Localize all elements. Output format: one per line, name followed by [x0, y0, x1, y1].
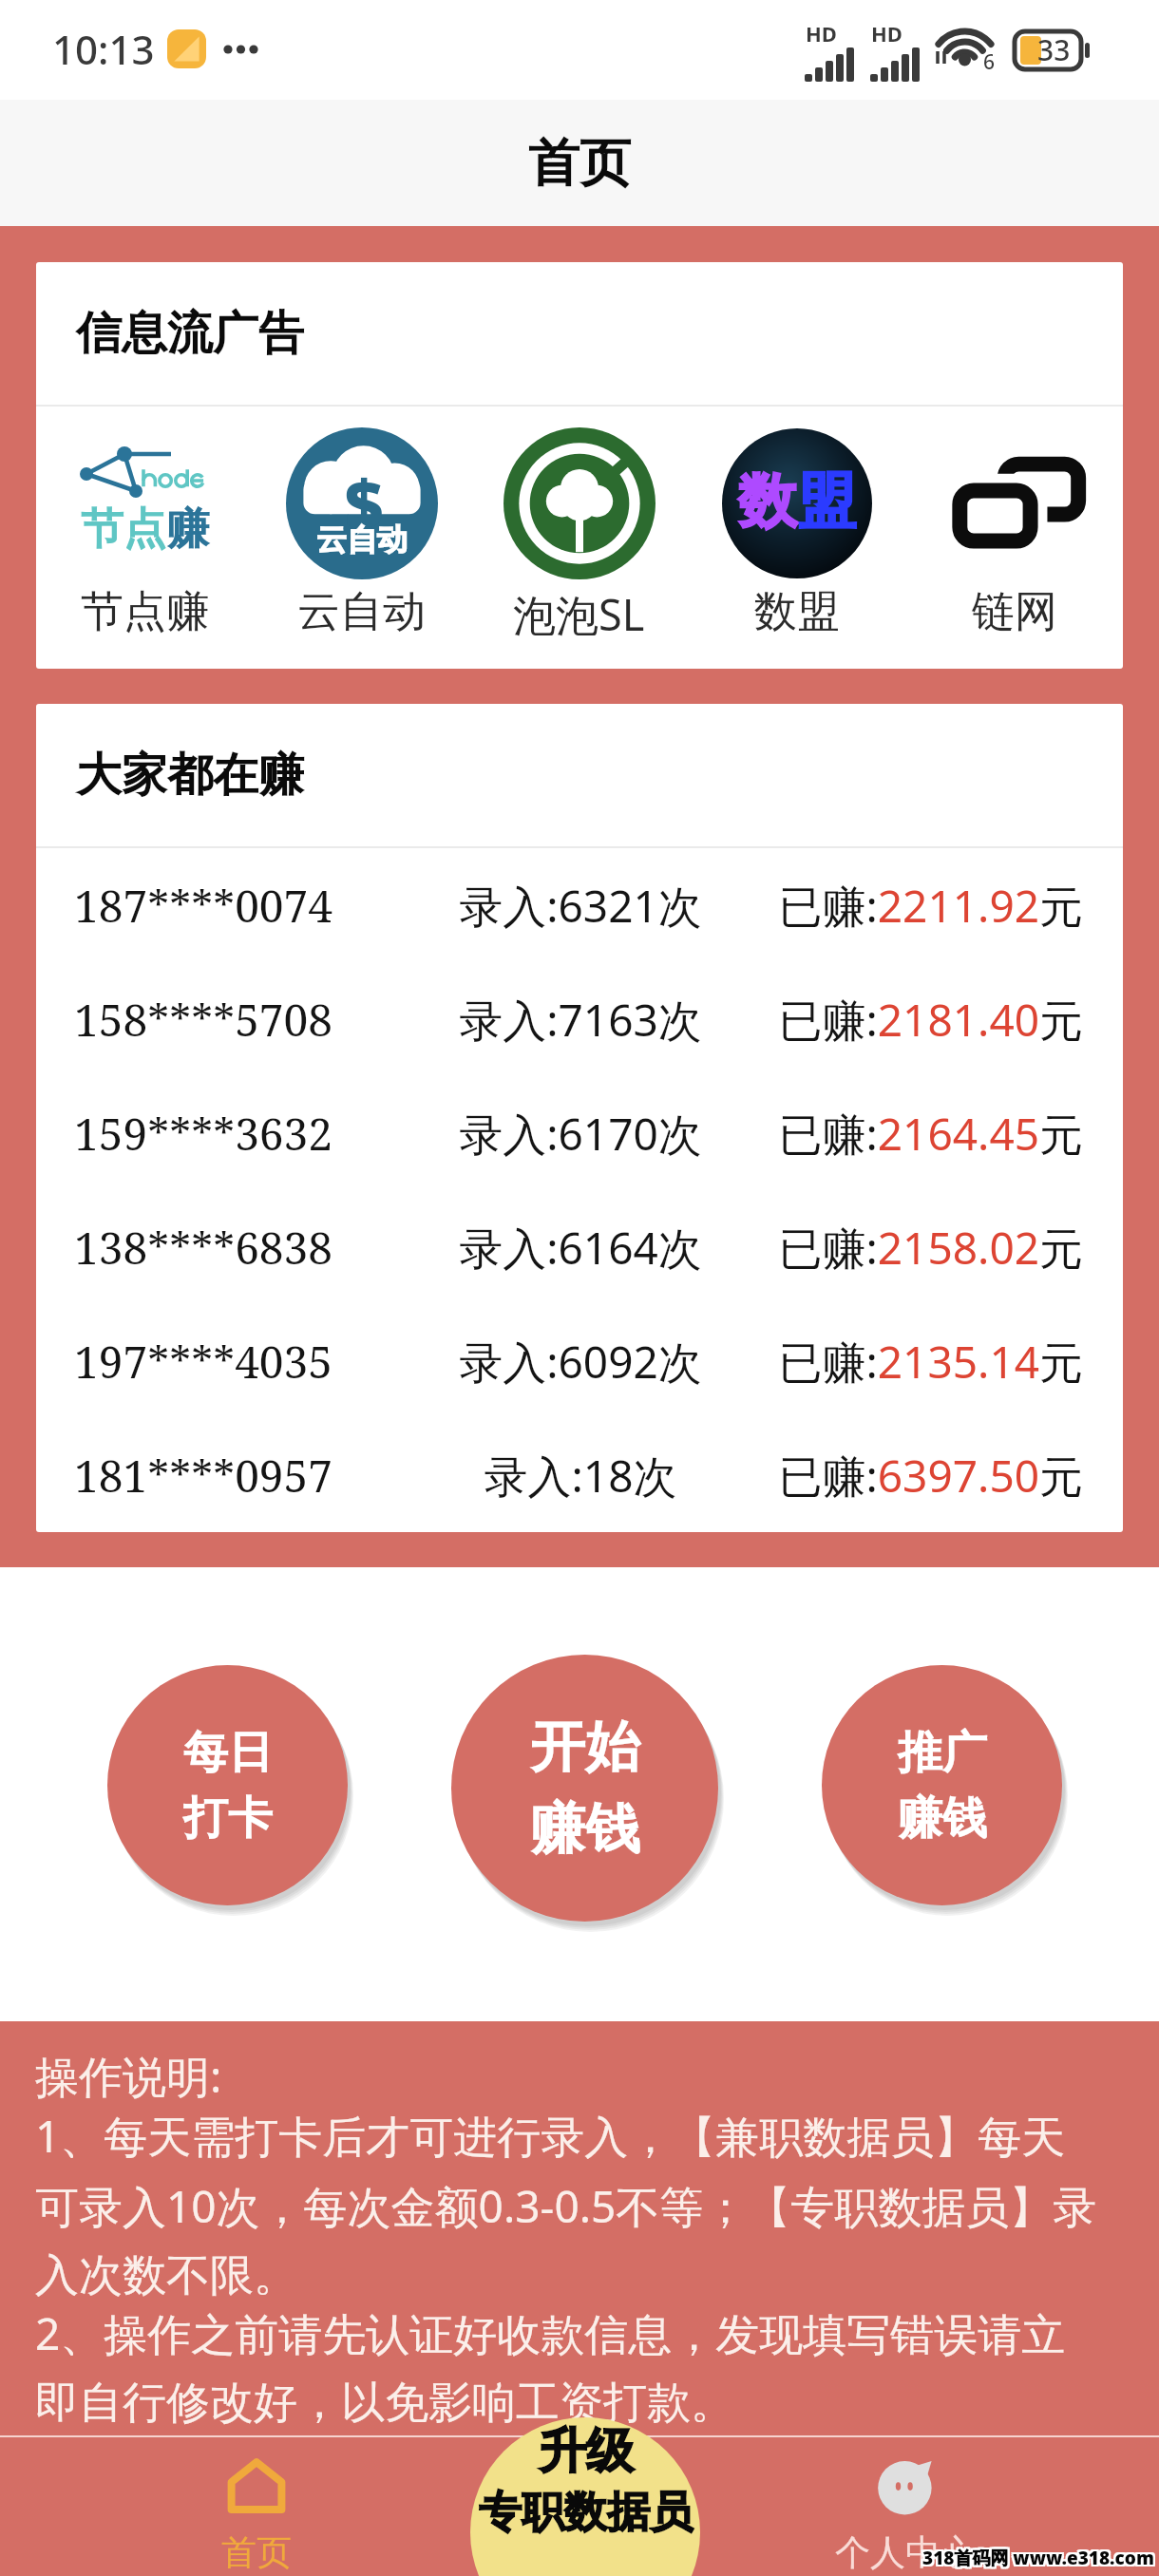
staticText: 录入:7163次	[424, 990, 737, 1050]
staticText: 首页	[528, 131, 631, 196]
staticText: 赚	[166, 502, 209, 557]
staticText: 推广	[898, 1725, 987, 1781]
button[interactable]: 节点	[36, 407, 253, 669]
staticText: 33	[1037, 30, 1071, 68]
button[interactable]: 每日	[107, 1665, 348, 1905]
staticText: 318首码网 www.e318.com	[922, 2548, 1154, 2572]
staticText: 大家都在赚	[76, 747, 304, 804]
staticText: 2、操作之前请先认证好收款信息，发现填写错误请立即自行修改好，以免影响工资打款。	[35, 2303, 1098, 2431]
staticText: 录入:18次	[424, 1446, 737, 1506]
staticText: 318首码网 www.e318.com	[921, 2544, 1152, 2568]
staticText: 181****0957	[74, 1446, 424, 1506]
staticText: 138****6838	[74, 1218, 424, 1278]
staticText: 197****4035	[74, 1332, 424, 1392]
staticText: 操作说明:	[35, 2046, 222, 2106]
staticText: 信息流广告	[76, 305, 304, 362]
staticText: 个人中心	[835, 2530, 976, 2575]
button[interactable]: 187****0074	[36, 848, 1123, 962]
staticText: HD	[871, 19, 902, 47]
staticText: 云自动	[316, 521, 408, 559]
button[interactable]: 推广	[822, 1665, 1062, 1905]
staticText: 已赚:2181.40元	[737, 990, 1083, 1050]
staticText: 录入:6164次	[424, 1218, 737, 1278]
staticText: 6	[983, 48, 996, 76]
other: 首页	[228, 2458, 285, 2515]
staticText: 158****5708	[74, 990, 424, 1050]
staticText: $	[345, 458, 384, 548]
staticText: 赚钱	[530, 1794, 640, 1864]
staticText: 318首码网 www.e318.com	[922, 2544, 1154, 2568]
button[interactable]: 链网	[905, 407, 1123, 669]
button[interactable]: 数	[688, 407, 905, 669]
staticText: 链网	[972, 585, 1057, 639]
staticText: 开始	[530, 1713, 640, 1782]
staticText: 10:13	[52, 22, 155, 76]
staticText: 318首码网 www.e318.com	[922, 2546, 1154, 2570]
staticText: 318首码网 www.e318.com	[922, 2546, 1154, 2570]
staticText: 318首码网 www.e318.com	[921, 2546, 1152, 2570]
staticText: HD	[806, 19, 837, 47]
staticText: 泡泡SL	[513, 585, 645, 643]
staticText: 数	[738, 464, 797, 539]
staticText: 节点	[81, 502, 166, 557]
button[interactable]: 197****4035	[36, 1304, 1123, 1418]
button[interactable]: $	[253, 407, 470, 669]
staticText: 已赚:2135.14元	[737, 1332, 1083, 1392]
staticText: 升级	[539, 2421, 634, 2481]
staticText: 已赚:6397.50元	[737, 1446, 1083, 1506]
button[interactable]: 开始	[451, 1655, 718, 1922]
staticText: 每日	[183, 1725, 273, 1781]
button[interactable]: 升级	[470, 2417, 700, 2576]
staticText: 云自动	[297, 585, 426, 639]
button[interactable]: 158****5708	[36, 962, 1123, 1076]
staticText: 318首码网 www.e318.com	[924, 2548, 1156, 2572]
staticText: 专职数据员	[479, 2486, 693, 2540]
staticText: 首页	[221, 2530, 292, 2575]
button[interactable]: 首页	[171, 2435, 342, 2576]
staticText: 数盟	[754, 585, 840, 639]
button[interactable]: 181****0957	[36, 1418, 1123, 1532]
button[interactable]: 个人中心	[820, 2435, 991, 2576]
button[interactable]: 138****6838	[36, 1190, 1123, 1304]
other: 个人中心	[877, 2458, 934, 2515]
staticText: 已赚:2211.92元	[737, 876, 1083, 936]
staticText: 1、每天需打卡后才可进行录入，【兼职数据员】每天可录入10次，每次金额0.3-0…	[35, 2106, 1098, 2303]
staticText: 已赚:2158.02元	[737, 1218, 1083, 1278]
staticText: 187****0074	[74, 876, 424, 936]
staticText: 盟	[797, 464, 856, 539]
staticText: 打卡	[183, 1790, 273, 1847]
staticText: 159****3632	[74, 1104, 424, 1164]
staticText: 节点赚	[81, 585, 209, 639]
staticText: 录入:6321次	[424, 876, 737, 936]
staticText: 赚钱	[898, 1790, 987, 1847]
staticText: 录入:6170次	[424, 1104, 737, 1164]
staticText: 318首码网 www.e318.com	[921, 2548, 1152, 2572]
staticText: 318首码网 www.e318.com	[924, 2544, 1156, 2568]
button[interactable]: 泡泡SL	[470, 407, 688, 669]
button[interactable]: 首页	[0, 100, 1159, 226]
staticText: 318首码网 www.e318.com	[924, 2546, 1156, 2570]
staticText: 录入:6092次	[424, 1332, 737, 1392]
button[interactable]: 159****3632	[36, 1076, 1123, 1190]
staticText: 已赚:2164.45元	[737, 1104, 1083, 1164]
